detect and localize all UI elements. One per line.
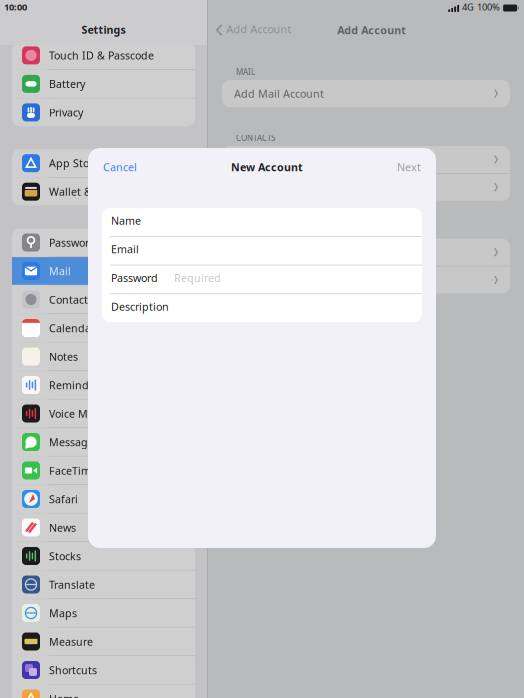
button[interactable]: Name [102,208,422,236]
button[interactable]: Password [102,265,422,293]
staticText: Voice Memos [49,406,115,421]
button[interactable]: Next [389,152,436,182]
button[interactable] [222,239,510,266]
staticText: 4G [462,1,474,13]
staticText: Touch ID & Passcode [49,48,154,62]
button[interactable]: Passwords [12,229,195,256]
staticText: Add Account [226,22,291,36]
staticText: Mail [49,264,71,278]
button[interactable]: Notes [12,343,195,370]
staticText: Add Account [337,23,406,37]
button[interactable] [222,146,510,173]
button[interactable]: Privacy [12,98,195,126]
button[interactable]: Add Mail Account [222,80,510,107]
button[interactable] [222,174,510,201]
staticText: 10:00 [4,1,27,13]
button[interactable]: FaceTime [12,457,195,484]
staticText: Cancel [103,160,137,174]
button[interactable]: News [12,514,195,541]
staticText: MAIL [236,67,255,77]
staticText: Contacts [49,292,93,307]
staticText: Settings [81,22,125,37]
button[interactable]: Touch ID & Passcode [12,41,195,69]
staticText: Passwords [49,235,101,250]
staticText: Next [397,160,421,174]
staticText: Translate [49,577,95,592]
staticText: FaceTime [49,463,97,478]
button[interactable]: Add Account [208,18,291,42]
button[interactable]: Measure [12,628,195,655]
button[interactable]: Description [102,294,422,322]
staticText: Wallet & Apple Pay [49,185,145,199]
staticText: Messages [49,435,99,449]
staticText: Stocks [49,549,81,563]
button[interactable]: Battery [12,70,195,98]
button[interactable] [222,266,510,293]
staticText: Home [49,691,79,698]
button[interactable]: Contacts [12,286,195,313]
staticText: Notes [49,349,78,364]
button[interactable]: Messages [12,428,195,456]
staticText: New Account [231,160,303,174]
staticText: Reminders [49,378,104,392]
staticText: Email [111,242,139,256]
staticText: Calendar [49,321,95,335]
staticText: Privacy [49,105,83,119]
button[interactable]: Maps [12,599,195,627]
staticText: Password [111,271,158,285]
staticText: 100% [477,1,500,13]
button[interactable]: Translate [12,571,195,598]
staticText: Name [111,213,141,228]
staticText: Add Mail Account [234,86,324,101]
staticText: Safari [49,492,78,506]
staticText: App Store [49,156,99,170]
button[interactable]: Stocks [12,542,195,570]
button[interactable]: Wallet & Apple Pay [12,178,195,206]
button[interactable]: Calendar [12,314,195,342]
staticText: News [49,520,76,535]
staticText: Required [174,271,221,285]
button[interactable]: Email [102,237,422,265]
staticText: Measure [49,634,93,649]
button[interactable]: Mail [12,257,195,285]
button[interactable]: Home [12,685,195,698]
button[interactable]: App Store [12,149,195,177]
staticText: Description [111,299,169,314]
staticText: CONTACTS [236,133,275,143]
staticText: Shortcuts [49,663,97,677]
button[interactable]: Cancel [88,152,145,182]
button[interactable]: Shortcuts [12,656,195,684]
button[interactable]: Reminders [12,371,195,399]
button[interactable]: Voice Memos [12,400,195,427]
staticText: Maps [49,606,77,620]
staticText: Battery [49,77,85,91]
button[interactable]: Safari [12,485,195,513]
